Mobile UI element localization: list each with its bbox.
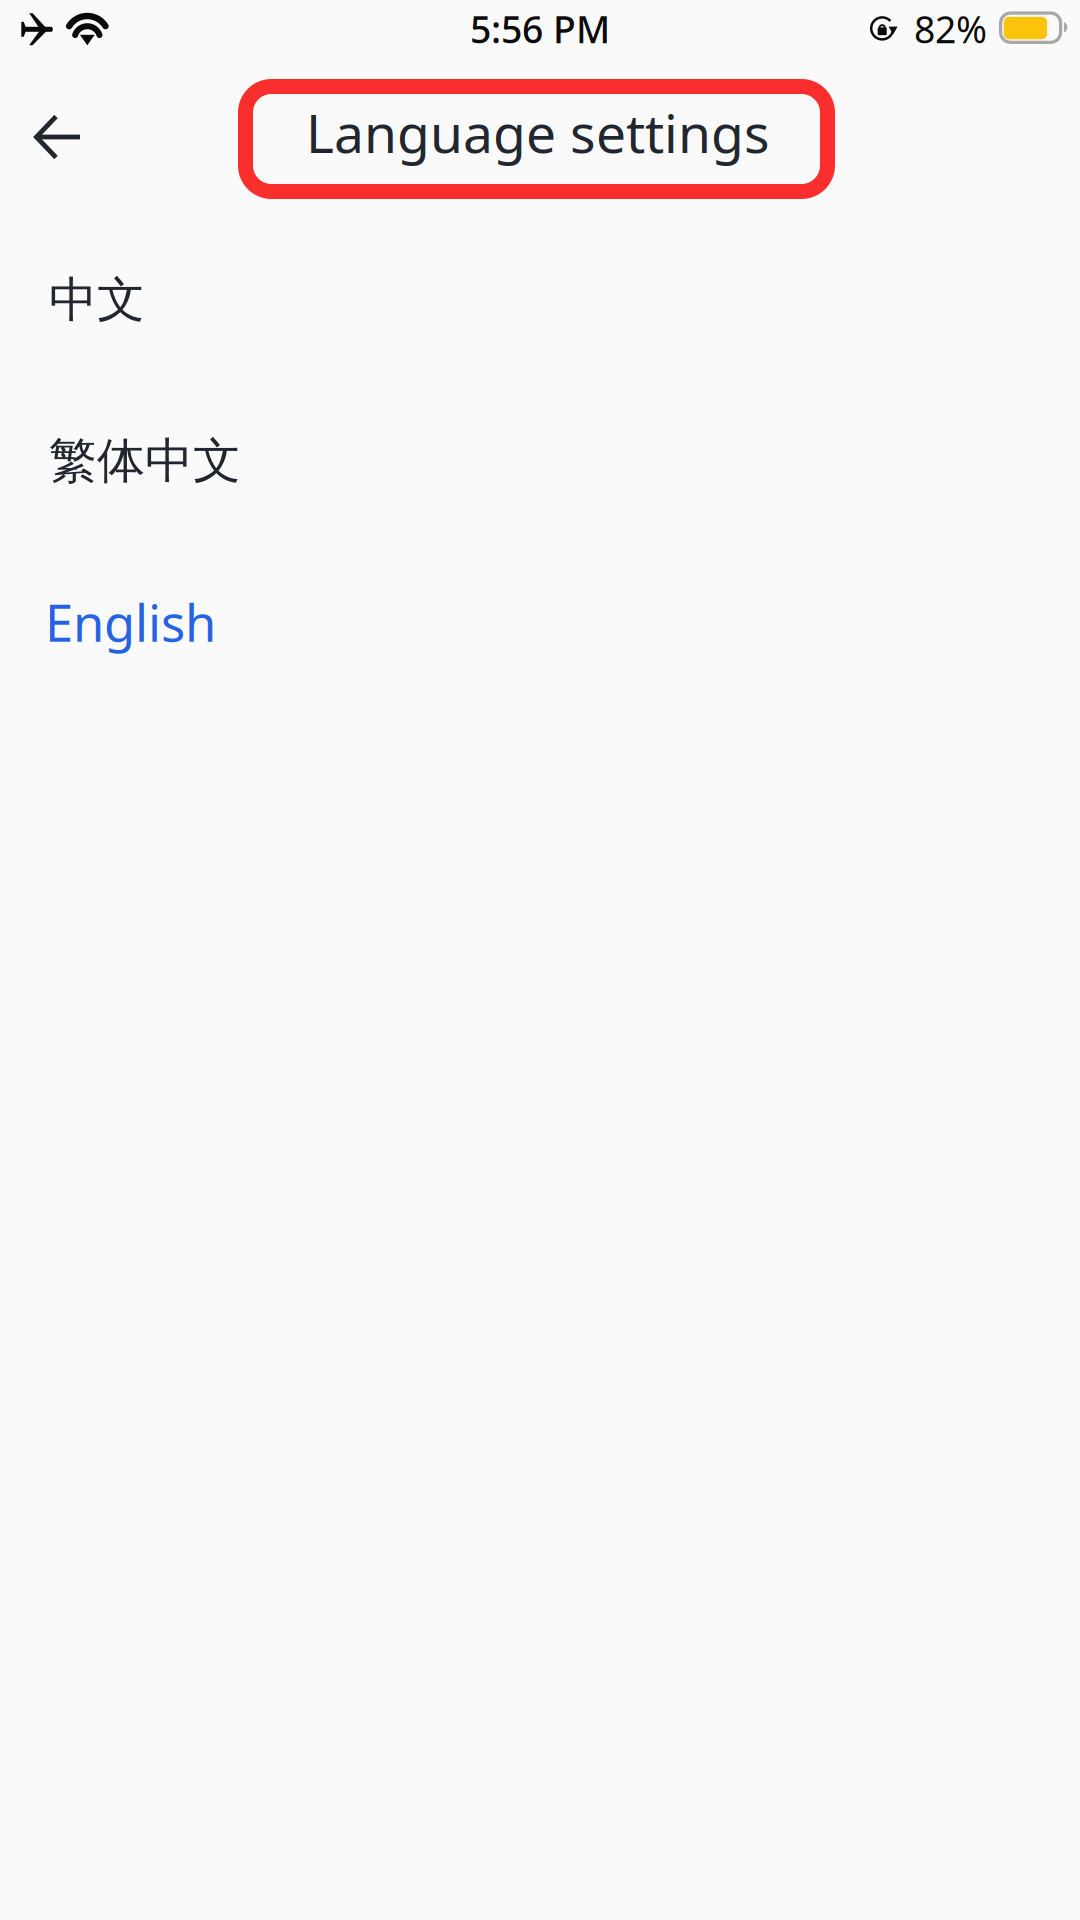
button[interactable]: English [0, 572, 1080, 672]
staticText: Language settings [306, 97, 770, 168]
staticText: English [45, 588, 216, 656]
staticText: 82% [914, 4, 987, 54]
staticText: 繁体中文 [49, 431, 241, 490]
button[interactable]: Back [12, 91, 104, 183]
button[interactable]: 繁体中文 [0, 411, 1080, 511]
staticText: 中文 [49, 270, 145, 329]
staticText: 5:56 PM [470, 4, 610, 54]
button[interactable]: 中文 [0, 250, 1080, 350]
